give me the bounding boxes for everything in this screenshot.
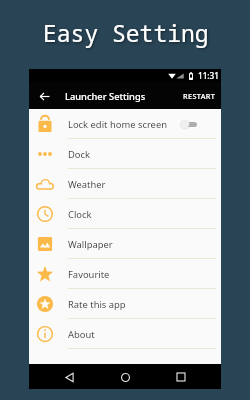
button[interactable]: Wallpaper [29,229,221,259]
staticText: Rate this app [68,298,126,311]
button[interactable]: Home [113,365,137,389]
button[interactable]: About [29,319,221,349]
button[interactable]: Rate this app [29,289,221,319]
staticText: About [68,328,95,341]
staticText: Dock [68,148,91,161]
staticText: Wallpaper [68,238,113,251]
staticText: Easy Setting [43,17,209,48]
staticText: RESTART [183,91,216,101]
staticText: Lock edit home screen [68,118,167,131]
button[interactable]: Back [57,365,81,389]
staticText: Weather [68,178,106,191]
button[interactable]: RESTART [178,86,221,106]
button[interactable]: Dock [29,139,221,169]
button[interactable]: Weather [29,169,221,199]
button[interactable]: Lock edit home screen [29,109,221,139]
button[interactable]: Favourite [29,259,221,289]
button[interactable]: Clock [29,199,221,229]
staticText: Favourite [68,268,110,281]
button[interactable]: Recent apps [169,365,193,389]
staticText: 11:31 [198,70,219,81]
staticText: Clock [68,208,92,221]
button[interactable]: Navigate up [33,85,55,107]
staticText: Launcher Settings [65,90,146,103]
